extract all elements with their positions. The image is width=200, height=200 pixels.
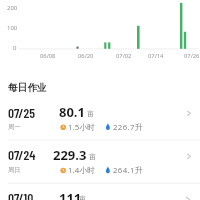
staticText: 07/14 (148, 52, 164, 60)
button[interactable] (0, 97, 200, 140)
staticText: 229.3 (53, 146, 87, 164)
staticText: 06/20 (78, 52, 94, 60)
staticText: 0 (13, 44, 17, 52)
staticText: 1.4小时 (68, 165, 96, 176)
staticText: 周日 (8, 166, 21, 174)
staticText: 06/08 (40, 52, 56, 60)
staticText: 亩 (79, 194, 86, 200)
staticText: 226.7升 (113, 122, 144, 133)
button[interactable] (0, 183, 200, 200)
staticText: 07/26 (184, 52, 200, 60)
staticText: 264.1升 (113, 165, 144, 176)
staticText: 07/24 (8, 146, 36, 162)
staticText: 200 (7, 4, 18, 12)
staticText: 07/25 (8, 104, 36, 120)
staticText: 111 (59, 189, 82, 200)
staticText: 亩 (87, 109, 94, 118)
staticText: 07/10 (8, 189, 34, 200)
staticText: 每日作业 (8, 82, 47, 94)
staticText: 07/02 (116, 52, 132, 60)
staticText: 100 (7, 24, 18, 32)
staticText: 亩 (89, 152, 96, 161)
staticText: 周一 (8, 123, 21, 131)
button[interactable] (0, 140, 200, 183)
staticText: 80.1 (59, 103, 85, 121)
staticText: 1.5小时 (68, 122, 96, 133)
